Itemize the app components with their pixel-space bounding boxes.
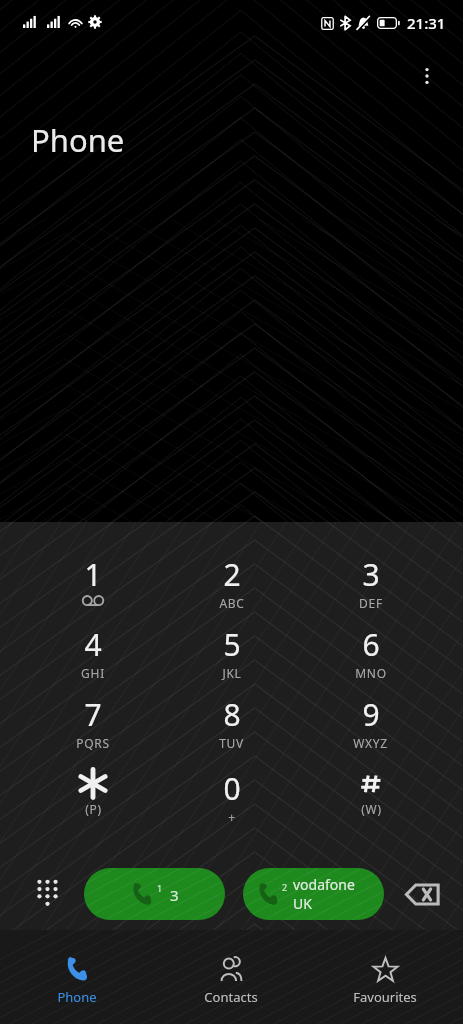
button[interactable]: Contacts bbox=[159, 930, 303, 1024]
staticText: Phone bbox=[31, 119, 125, 161]
button[interactable]: Dial # bbox=[301, 752, 440, 822]
staticText: + bbox=[228, 809, 236, 822]
staticText: 4 bbox=[84, 624, 102, 665]
staticText: UK bbox=[293, 894, 312, 913]
staticText: GHI bbox=[81, 665, 105, 681]
staticText: 2 bbox=[282, 881, 288, 893]
button[interactable]: Dial 5 bbox=[162, 612, 301, 682]
staticText: JKL bbox=[222, 665, 242, 681]
staticText: 8 bbox=[223, 694, 241, 735]
button[interactable]: Keypad bbox=[21, 863, 73, 921]
button[interactable]: Dial * bbox=[23, 752, 162, 822]
staticText: ABC bbox=[219, 595, 245, 611]
staticText: (W) bbox=[361, 801, 382, 817]
button[interactable]: Call with SIM 2, vodafone UK bbox=[243, 868, 384, 920]
staticText: 21:31 bbox=[407, 13, 446, 33]
staticText: 3 bbox=[362, 554, 380, 595]
staticText: Contacts bbox=[204, 988, 258, 1006]
button[interactable]: Dial 2 bbox=[162, 542, 301, 612]
staticText: Favourites bbox=[353, 988, 417, 1006]
button[interactable]: Dial 9 bbox=[301, 682, 440, 752]
button[interactable]: Dial 6 bbox=[301, 612, 440, 682]
staticText: vodafone bbox=[293, 875, 355, 894]
button[interactable]: Dial 7 bbox=[23, 682, 162, 752]
staticText: 9 bbox=[362, 694, 380, 735]
button[interactable]: More options bbox=[406, 55, 448, 97]
button[interactable]: Call with SIM 1, 3 bbox=[84, 868, 225, 920]
staticText: 1 bbox=[84, 554, 102, 595]
staticText: (P) bbox=[85, 801, 102, 817]
staticText: DEF bbox=[359, 595, 383, 611]
button[interactable]: Dial 3 bbox=[301, 542, 440, 612]
button[interactable]: Dial 8 bbox=[162, 682, 301, 752]
button[interactable]: Dial 4 bbox=[23, 612, 162, 682]
staticText: PQRS bbox=[76, 735, 110, 751]
staticText: 3 bbox=[170, 885, 179, 905]
staticText: 1 bbox=[157, 882, 163, 894]
staticText: 0 bbox=[223, 768, 241, 809]
button[interactable]: Delete bbox=[396, 865, 450, 923]
button[interactable]: Dial 1 bbox=[23, 542, 162, 612]
staticText: 7 bbox=[84, 694, 102, 735]
button[interactable]: Dial 0 bbox=[162, 752, 301, 822]
staticText: 5 bbox=[223, 624, 241, 665]
button[interactable]: Favourites bbox=[313, 930, 457, 1024]
staticText: TUV bbox=[219, 735, 244, 751]
button[interactable]: Phone bbox=[5, 930, 149, 1024]
staticText: 2 bbox=[223, 554, 241, 595]
staticText: 6 bbox=[362, 624, 380, 665]
staticText: Phone bbox=[57, 988, 97, 1006]
staticText: WXYZ bbox=[353, 735, 388, 751]
staticText: MNO bbox=[355, 665, 387, 681]
